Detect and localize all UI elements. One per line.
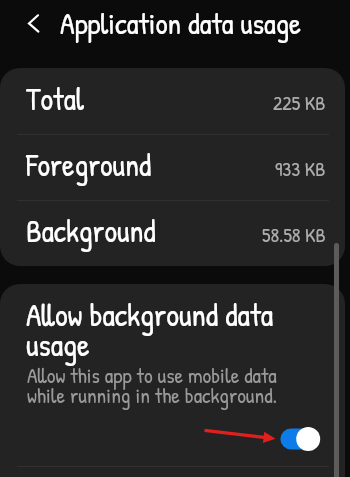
- button[interactable]: Foreground: [0, 134, 345, 200]
- staticText: Allow background data: [26, 293, 274, 336]
- staticText: Background: [26, 210, 156, 252]
- button[interactable]: Allow background data: [0, 284, 345, 477]
- staticText: Foreground: [26, 144, 152, 186]
- staticText: usage: [26, 323, 90, 366]
- button[interactable]: Background: [0, 200, 345, 266]
- button[interactable]: Allow background data usage: [274, 421, 326, 455]
- staticText: Application data usage: [60, 3, 302, 44]
- staticText: 225 KB: [273, 89, 326, 116]
- button[interactable]: Back: [14, 4, 54, 44]
- staticText: 933 KB: [275, 155, 326, 182]
- staticText: while running in the background.: [27, 381, 278, 410]
- staticText: Allow this app to use mobile data: [27, 361, 277, 390]
- staticText: 58.58 KB: [262, 221, 326, 248]
- button[interactable]: Total: [0, 68, 345, 134]
- staticText: Total: [26, 78, 85, 120]
